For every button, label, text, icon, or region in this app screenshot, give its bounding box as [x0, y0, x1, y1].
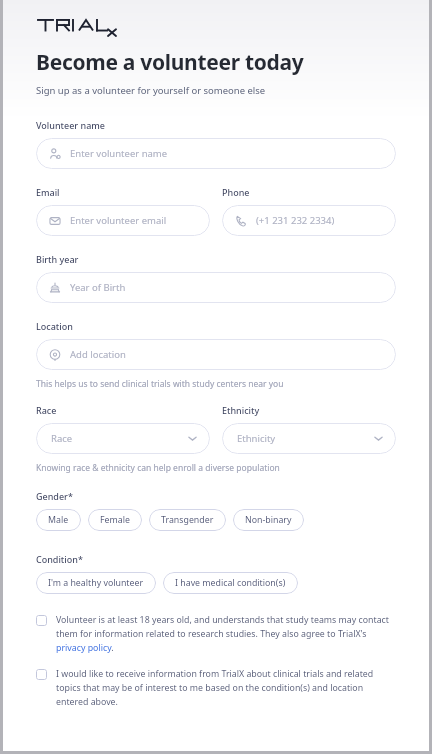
other: Checkbox — [36, 615, 47, 626]
button[interactable]: Checkbox — [36, 614, 396, 654]
staticText: Gender* — [36, 490, 73, 502]
staticText: Volunteer name — [36, 119, 105, 131]
staticText: Phone — [222, 186, 250, 198]
button[interactable]: (+1 231 232 2334) — [222, 205, 396, 236]
button[interactable]: I'm a healthy volunteer — [36, 572, 156, 594]
button[interactable]: Enter volunteer name — [36, 138, 396, 169]
button[interactable]: Transgender — [149, 509, 226, 531]
button[interactable]: Enter volunteer email — [36, 205, 210, 236]
staticText: Location — [36, 320, 73, 332]
staticText: Year of Birth — [70, 281, 126, 294]
staticText: Email — [36, 186, 60, 198]
button[interactable]: Add location — [36, 339, 396, 370]
button[interactable]: Race — [36, 423, 210, 454]
staticText: Ethnicity — [222, 404, 260, 416]
button[interactable]: Male — [36, 509, 81, 531]
staticText: Non-binary — [245, 514, 292, 526]
button[interactable]: Non-binary — [233, 509, 304, 531]
other: Checkbox — [36, 669, 47, 680]
staticText: Transgender — [161, 514, 214, 526]
button[interactable]: Female — [88, 509, 142, 531]
staticText: Volunteer is at least 18 years old, and … — [56, 614, 396, 654]
staticText: I have medical condition(s) — [175, 577, 286, 589]
staticText: Become a volunteer today — [36, 48, 304, 77]
staticText: I would like to receive information from… — [56, 668, 396, 708]
staticText: Condition* — [36, 553, 83, 565]
staticText: I'm a healthy volunteer — [48, 577, 144, 589]
button[interactable]: Ethnicity — [222, 423, 396, 454]
staticText: Add location — [70, 348, 126, 361]
staticText: Race — [36, 404, 57, 416]
staticText: Sign up as a volunteer for yourself or s… — [36, 84, 266, 97]
staticText: Race — [51, 432, 188, 445]
staticText: Knowing race & ethnicity can help enroll… — [36, 462, 280, 474]
button[interactable]: Year of Birth — [36, 272, 396, 303]
staticText: (+1 231 232 2334) — [256, 214, 335, 227]
staticText: Enter volunteer name — [70, 147, 168, 160]
staticText: Birth year — [36, 253, 79, 265]
button[interactable]: I have medical condition(s) — [163, 572, 298, 594]
staticText: Male — [48, 514, 69, 526]
button[interactable]: Checkbox — [36, 668, 396, 708]
staticText: Female — [100, 514, 130, 526]
staticText: Ethnicity — [237, 432, 374, 445]
staticText: Enter volunteer email — [70, 214, 167, 227]
staticText: This helps us to send clinical trials wi… — [36, 378, 284, 390]
